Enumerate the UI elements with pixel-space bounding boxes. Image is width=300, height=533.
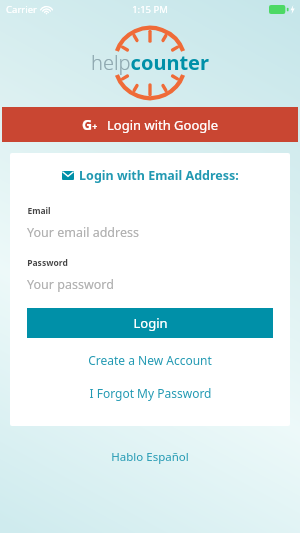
staticText: Create a New Account	[88, 352, 212, 368]
staticText: Your password	[27, 276, 114, 293]
button[interactable]: Login	[27, 308, 273, 338]
staticText: helpcounter	[91, 49, 209, 76]
button[interactable]: Create a New Account	[78, 349, 222, 371]
staticText: 1:15 PM	[132, 3, 168, 16]
button[interactable]: Hablo Español	[101, 446, 199, 468]
staticText: Login	[133, 314, 168, 332]
button[interactable]: Your email address	[27, 224, 273, 241]
staticText: Your email address	[27, 224, 139, 241]
staticText: Password	[27, 257, 68, 269]
other: Wi-Fi	[41, 6, 52, 14]
staticText: G+	[82, 115, 98, 134]
staticText: Hablo Español	[111, 449, 189, 465]
staticText: Carrier	[6, 3, 37, 16]
staticText: Email	[27, 205, 51, 217]
button[interactable]: Your password	[27, 276, 273, 293]
other: Battery	[269, 5, 288, 14]
staticText: Login with Email Address:	[79, 167, 239, 184]
staticText: I Forgot My Password	[89, 385, 212, 401]
button[interactable]: I Forgot My Password	[79, 382, 222, 404]
staticText: Login with Google	[107, 116, 218, 134]
button[interactable]: G+	[2, 107, 298, 142]
